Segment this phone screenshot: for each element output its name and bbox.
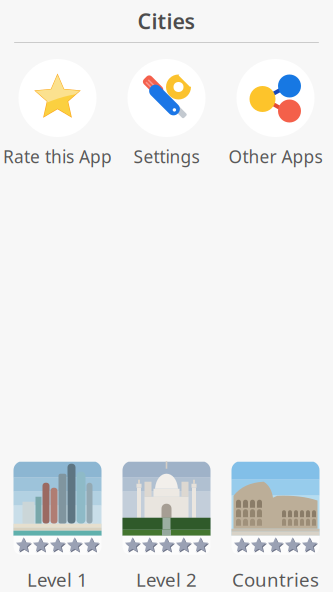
button[interactable]: Settings — [112, 59, 221, 168]
staticText: Settings — [133, 145, 199, 168]
staticText: Level 1 — [27, 567, 88, 592]
button[interactable]: Rate this App — [3, 59, 112, 168]
button[interactable]: Level 1 — [13, 461, 101, 592]
staticText: Rate this App — [3, 145, 112, 168]
button[interactable]: Level 2 — [122, 461, 210, 592]
staticText: Cities — [137, 7, 195, 35]
staticText: Other Apps — [228, 145, 322, 168]
staticText: Countries — [232, 567, 319, 592]
button[interactable]: Countries — [231, 461, 319, 592]
staticText: Level 2 — [136, 567, 197, 592]
button[interactable]: Other Apps — [221, 59, 330, 168]
